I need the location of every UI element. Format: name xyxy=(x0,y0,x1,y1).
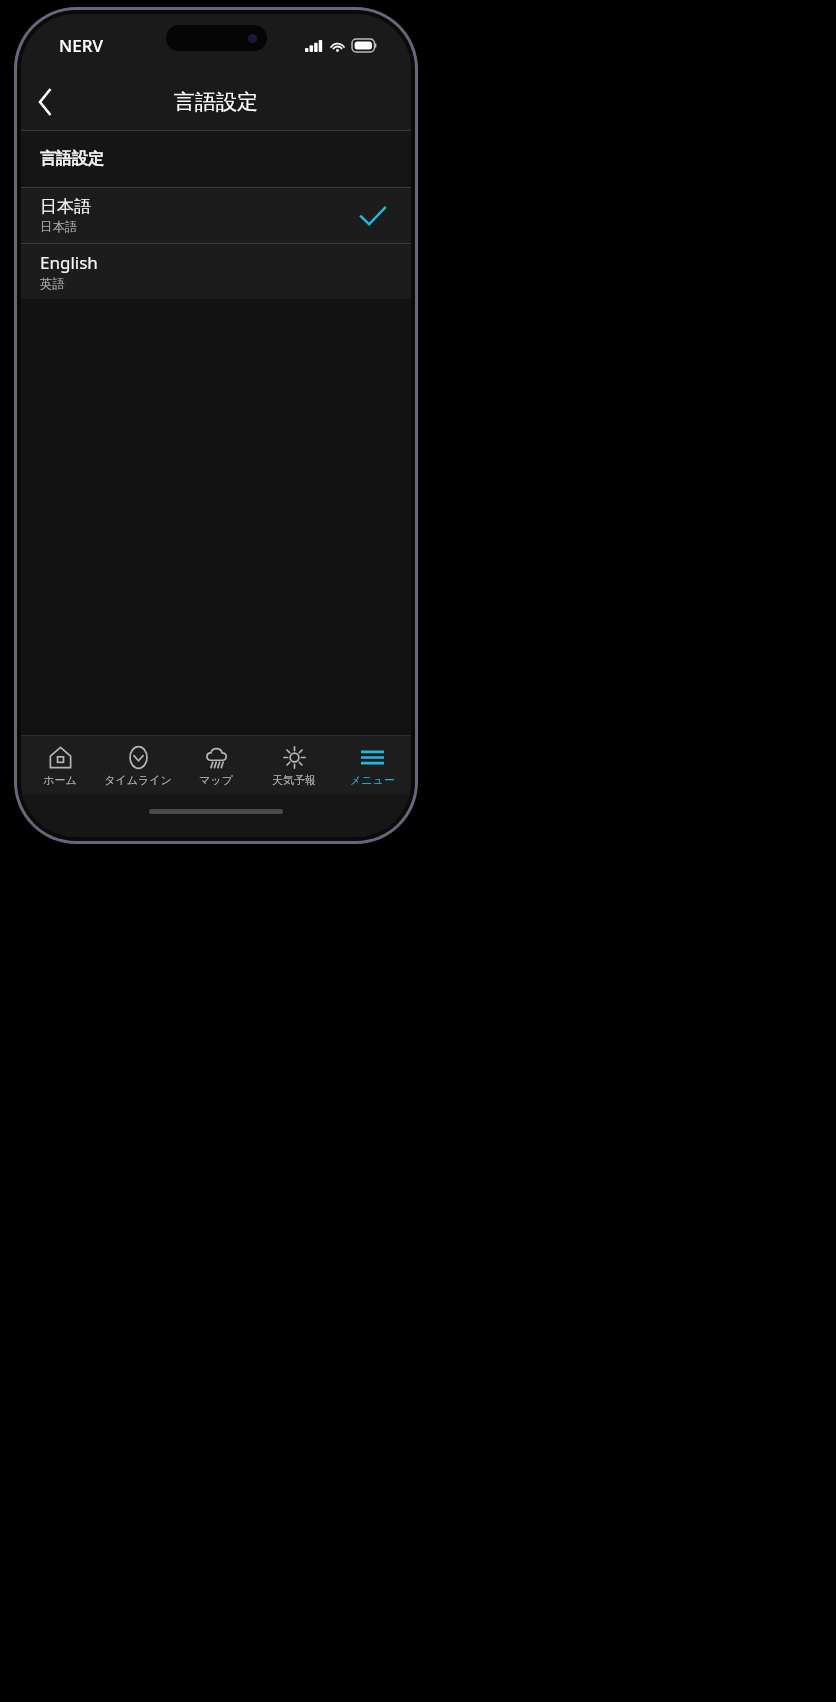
staticText: マップ xyxy=(199,773,233,787)
button[interactable]: 日本語 xyxy=(21,188,411,243)
staticText: English xyxy=(40,251,98,274)
staticText: メニュー xyxy=(350,773,395,787)
staticText: タイムライン xyxy=(104,773,172,787)
button[interactable]: 天気予報 xyxy=(255,736,333,795)
button[interactable]: Back xyxy=(21,78,69,126)
staticText: 言語設定 xyxy=(40,149,104,169)
staticText: 日本語 xyxy=(40,219,78,235)
staticText: 天気予報 xyxy=(272,773,316,787)
staticText: 言語設定 xyxy=(174,89,258,115)
button[interactable]: メニュー xyxy=(333,736,411,795)
staticText: NERV xyxy=(59,34,103,57)
button[interactable]: マップ xyxy=(177,736,255,795)
staticText: ホーム xyxy=(43,773,77,787)
staticText: 日本語 xyxy=(40,196,91,217)
button[interactable]: English xyxy=(21,244,411,299)
button[interactable]: ホーム xyxy=(21,736,99,795)
button[interactable]: タイムライン xyxy=(99,736,177,795)
staticText: 英語 xyxy=(40,276,65,292)
